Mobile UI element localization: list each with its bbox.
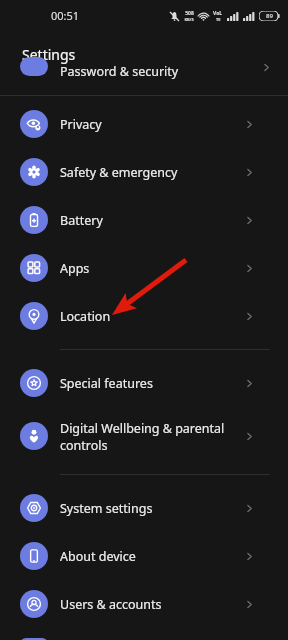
button[interactable]: Safety & emergency — [0, 148, 288, 196]
button[interactable]: Location — [0, 292, 288, 340]
button[interactable]: Apps — [0, 244, 288, 292]
staticText: Special features — [60, 375, 245, 392]
staticText: Location — [60, 308, 245, 325]
button[interactable]: Password & security — [0, 76, 288, 95]
button[interactable]: Users & accounts — [0, 580, 288, 628]
staticText: Digital Wellbeing & parental controls — [60, 420, 245, 453]
staticText: Safety & emergency — [60, 164, 245, 181]
button[interactable]: System settings — [0, 484, 288, 532]
button[interactable]: Battery — [0, 196, 288, 244]
staticText: Password & security — [60, 63, 179, 80]
staticText: KB/S — [184, 17, 194, 22]
staticText: System settings — [60, 500, 245, 517]
staticText: About device — [60, 548, 245, 565]
staticText: 00:51 — [51, 8, 80, 23]
button[interactable]: Privacy — [0, 100, 288, 148]
button[interactable]: About device — [0, 532, 288, 580]
staticText: TE — [216, 17, 221, 22]
staticText: Battery — [60, 212, 245, 229]
button[interactable]: Digital Wellbeing & parental controls — [0, 407, 288, 465]
staticText: VoL — [213, 10, 223, 17]
staticText: Apps — [60, 260, 245, 277]
button[interactable] — [0, 628, 288, 640]
staticText: 508 — [185, 10, 194, 17]
button[interactable]: Special features — [0, 359, 288, 407]
staticText: Users & accounts — [60, 596, 245, 613]
staticText: Settings — [22, 45, 76, 64]
staticText: Privacy — [60, 116, 245, 133]
staticText: 89 — [266, 12, 273, 20]
